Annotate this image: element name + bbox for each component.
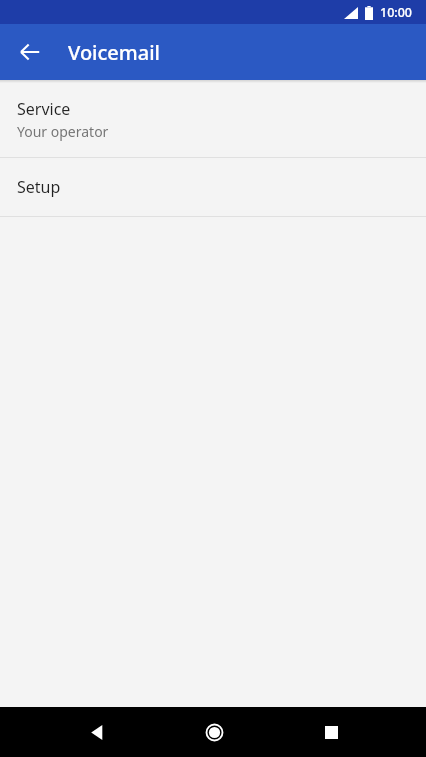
button[interactable]: Back (73, 708, 121, 756)
button[interactable]: Setup (0, 158, 426, 216)
staticText: Service (17, 98, 71, 120)
button[interactable]: Home (190, 708, 238, 756)
staticText: Voicemail (68, 39, 160, 66)
button[interactable]: Service (0, 83, 426, 157)
staticText: 10:00 (380, 4, 413, 21)
button[interactable]: Back (6, 28, 54, 76)
staticText: Your operator (17, 122, 109, 141)
button[interactable]: Recent apps (307, 708, 355, 756)
staticText: Setup (17, 176, 61, 198)
